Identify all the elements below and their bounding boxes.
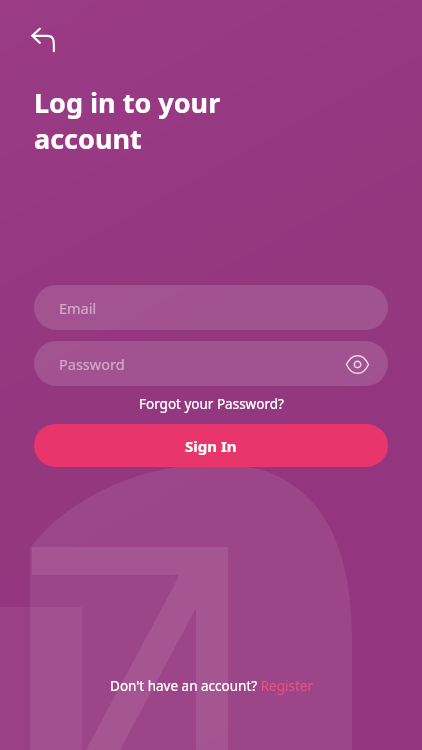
button[interactable]: Sign In — [34, 424, 388, 467]
staticText: Password — [59, 354, 125, 374]
button[interactable]: Forgot your Password? — [131, 393, 292, 415]
staticText: Email — [59, 298, 97, 318]
button[interactable]: Show password — [340, 347, 374, 381]
staticText: Don't have an account? Register — [110, 677, 313, 695]
button[interactable]: Don't have an account? Register — [102, 674, 321, 698]
staticText: Forgot your Password? — [139, 395, 284, 413]
staticText: Sign In — [185, 436, 237, 456]
button[interactable]: Password — [34, 341, 388, 386]
button[interactable]: Email — [34, 285, 388, 330]
staticText: Log in to your account — [34, 84, 221, 157]
button[interactable]: Back — [22, 18, 66, 62]
